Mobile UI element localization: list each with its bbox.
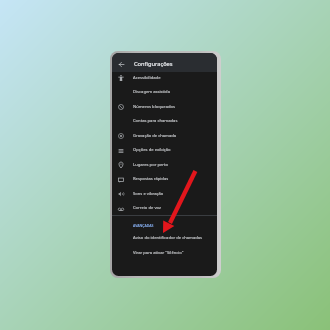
staticText: Acessibilidade bbox=[133, 75, 161, 81]
button[interactable]: AVANÇADAS bbox=[112, 218, 217, 233]
staticText: Respostas rápidas bbox=[133, 176, 169, 182]
staticText: Contas para chamadas bbox=[133, 118, 178, 124]
staticText: Correio de voz bbox=[133, 205, 161, 211]
staticText: Números bloqueados bbox=[133, 104, 176, 110]
button[interactable]: Virar para ativar "Silêncio" bbox=[112, 245, 217, 260]
button[interactable]: Contas para chamadas bbox=[112, 113, 217, 128]
button[interactable]: Aviso do identificador de chamadas bbox=[112, 230, 217, 245]
button[interactable]: Gravação de chamada bbox=[112, 128, 217, 143]
staticText: Gravação de chamada bbox=[133, 133, 177, 139]
button[interactable]: Discagem assistida bbox=[112, 84, 217, 99]
staticText: Aviso do identificador de chamadas bbox=[133, 235, 203, 241]
staticText: Virar para ativar "Silêncio" bbox=[133, 250, 184, 256]
button[interactable]: Números bloqueados bbox=[112, 99, 217, 114]
staticText: Discagem assistida bbox=[133, 89, 170, 95]
button[interactable]: Correio de voz bbox=[112, 200, 217, 215]
staticText: Sons e vibração bbox=[133, 191, 164, 197]
button[interactable]: Respostas rápidas bbox=[112, 171, 217, 186]
staticText: AVANÇADAS bbox=[133, 223, 154, 228]
button[interactable]: Opções de exibição bbox=[112, 142, 217, 157]
button[interactable]: Lugares por perto bbox=[112, 157, 217, 172]
button[interactable]: Sons e vibração bbox=[112, 186, 217, 201]
staticText: Configurações bbox=[134, 60, 173, 68]
staticText: Opções de exibição bbox=[133, 147, 171, 153]
button[interactable]: Back bbox=[115, 58, 127, 70]
staticText: Lugares por perto bbox=[133, 162, 169, 168]
button[interactable]: Acessibilidade bbox=[112, 70, 217, 85]
